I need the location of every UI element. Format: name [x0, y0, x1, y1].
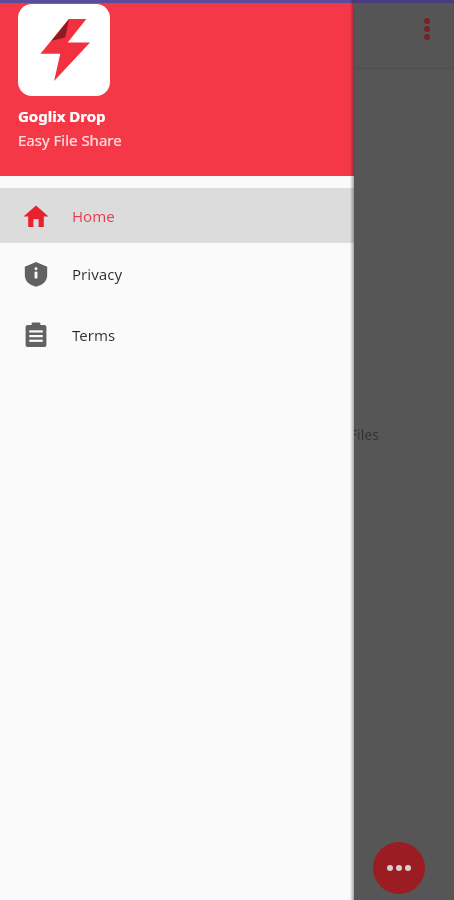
button[interactable]: More actions	[373, 842, 425, 894]
button[interactable]: Home	[0, 188, 354, 243]
button[interactable]: Privacy	[0, 243, 354, 304]
staticText: Easy File Share	[18, 130, 122, 150]
staticText: Terms	[72, 325, 116, 345]
button[interactable]: Terms	[0, 304, 354, 365]
staticText: Home	[72, 206, 115, 226]
button[interactable]: More options	[410, 12, 444, 46]
staticText: Shared Files	[300, 425, 379, 444]
staticText: Privacy	[72, 264, 123, 284]
staticText: Goglix Drop	[18, 106, 106, 126]
